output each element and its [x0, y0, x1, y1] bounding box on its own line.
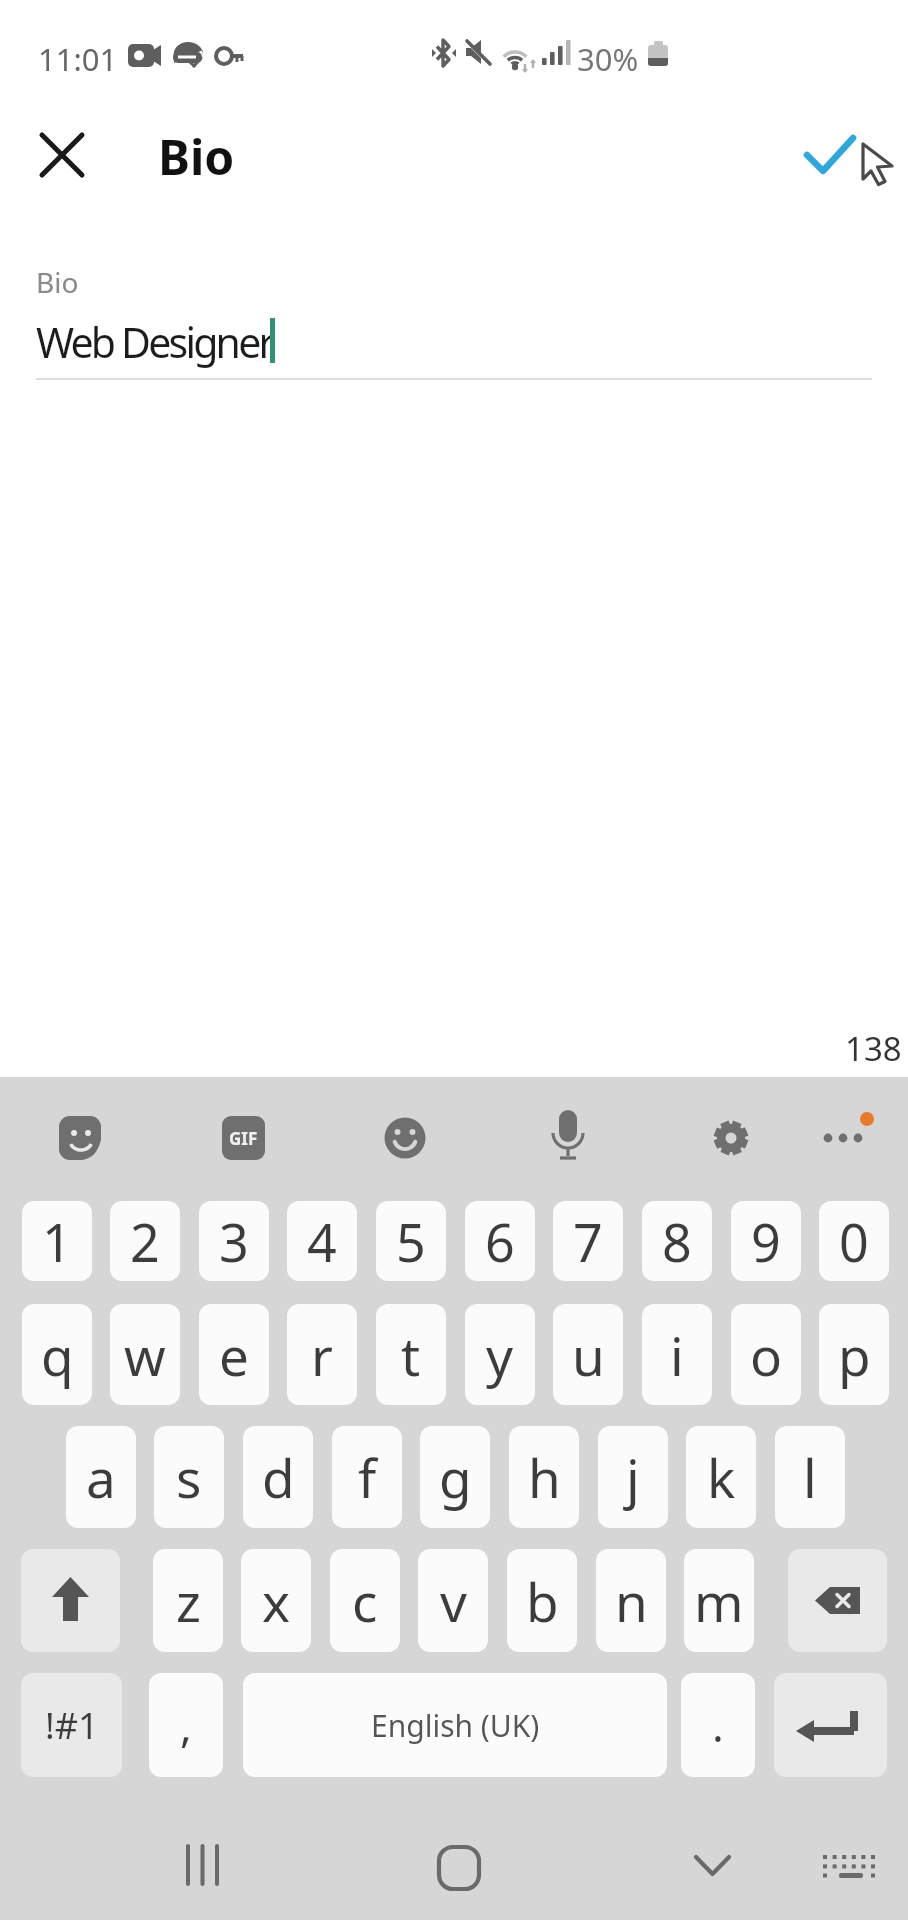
button[interactable]: v	[418, 1549, 488, 1652]
button[interactable]: r	[287, 1304, 357, 1405]
button[interactable]: 7	[553, 1201, 623, 1281]
button[interactable]: g	[420, 1426, 490, 1528]
button[interactable]	[21, 1549, 120, 1652]
button[interactable]: 3	[199, 1201, 269, 1281]
staticText: p	[838, 1319, 871, 1391]
staticText: 7	[573, 1206, 603, 1277]
staticText: 3	[219, 1206, 249, 1277]
staticText: Bio	[158, 124, 235, 189]
button[interactable]: x	[241, 1549, 311, 1652]
staticText: r	[311, 1319, 333, 1391]
staticText: x	[262, 1565, 291, 1637]
button[interactable]: 0	[819, 1201, 889, 1281]
button[interactable]: GIF	[215, 1110, 271, 1166]
staticText: a	[86, 1441, 116, 1513]
staticText: !#1	[45, 1701, 99, 1750]
button[interactable]: .	[681, 1673, 755, 1777]
staticText: o	[750, 1319, 783, 1391]
button[interactable]	[788, 1549, 887, 1652]
staticText: 8	[662, 1206, 692, 1277]
button[interactable]: o	[731, 1304, 801, 1405]
button[interactable]: 1	[22, 1201, 92, 1281]
staticText: 138	[845, 1026, 902, 1071]
staticText: English (UK)	[371, 1705, 540, 1746]
staticText: k	[707, 1441, 736, 1513]
button[interactable]	[31, 124, 93, 186]
staticText: 6	[485, 1206, 515, 1277]
staticText: .	[712, 1695, 724, 1755]
button[interactable]: w	[110, 1304, 180, 1405]
staticText: u	[572, 1319, 605, 1391]
button[interactable]: ,	[149, 1673, 223, 1777]
staticText: 5	[396, 1206, 426, 1277]
button[interactable]: u	[553, 1304, 623, 1405]
staticText: Bio	[36, 263, 79, 301]
staticText: w	[124, 1319, 166, 1391]
staticText: ,	[180, 1695, 192, 1755]
button[interactable]: b	[507, 1549, 577, 1652]
button[interactable]: j	[598, 1426, 668, 1528]
button[interactable]	[795, 125, 865, 187]
button[interactable]: f	[332, 1426, 402, 1528]
staticText: 2	[130, 1206, 160, 1277]
button[interactable]: m	[684, 1549, 754, 1652]
staticText: 11:01	[38, 38, 118, 80]
button[interactable]: t	[376, 1304, 446, 1405]
staticText: 9	[751, 1206, 781, 1277]
button[interactable]: c	[330, 1549, 400, 1652]
staticText: j	[626, 1441, 640, 1513]
button[interactable]	[430, 1840, 486, 1894]
staticText: Web Designer	[36, 314, 273, 370]
staticText: 30%	[577, 38, 639, 80]
button[interactable]	[377, 1110, 433, 1166]
button[interactable]	[703, 1110, 759, 1166]
button[interactable]: English (UK)	[243, 1673, 667, 1777]
button[interactable]	[52, 1110, 108, 1166]
staticText: 4	[307, 1206, 337, 1277]
staticText: t	[401, 1319, 421, 1391]
staticText: m	[694, 1565, 744, 1637]
button[interactable]: 9	[731, 1201, 801, 1281]
staticText: d	[262, 1441, 295, 1513]
button[interactable]: p	[819, 1304, 889, 1405]
staticText: f	[358, 1441, 377, 1513]
staticText: v	[440, 1565, 467, 1637]
button[interactable]: n	[596, 1549, 666, 1652]
staticText: s	[176, 1441, 202, 1513]
button[interactable]: 4	[287, 1201, 357, 1281]
button[interactable]	[540, 1106, 596, 1166]
staticText: 1	[42, 1206, 72, 1277]
button[interactable]	[774, 1673, 887, 1777]
button[interactable]: e	[199, 1304, 269, 1405]
button[interactable]: 2	[110, 1201, 180, 1281]
staticText: h	[528, 1441, 561, 1513]
button[interactable]: d	[243, 1426, 313, 1528]
staticText: i	[670, 1319, 684, 1391]
button[interactable]: s	[154, 1426, 224, 1528]
button[interactable]: !#1	[21, 1673, 122, 1777]
button[interactable]: q	[22, 1304, 92, 1405]
staticText: z	[176, 1565, 201, 1637]
button[interactable]: 8	[642, 1201, 712, 1281]
button[interactable]	[36, 258, 872, 378]
button[interactable]: k	[686, 1426, 756, 1528]
staticText: b	[526, 1565, 559, 1637]
button[interactable]	[812, 1106, 882, 1166]
button[interactable]: 5	[376, 1201, 446, 1281]
button[interactable]: h	[509, 1426, 579, 1528]
staticText: g	[439, 1441, 472, 1513]
button[interactable]: y	[465, 1304, 535, 1405]
staticText: e	[219, 1319, 249, 1391]
button[interactable]	[818, 1846, 880, 1886]
button[interactable]	[178, 1838, 228, 1890]
button[interactable]: l	[775, 1426, 845, 1528]
button[interactable]: z	[153, 1549, 223, 1652]
staticText: 0	[839, 1206, 869, 1277]
staticText: GIF	[229, 1127, 258, 1150]
staticText: l	[803, 1441, 817, 1513]
button[interactable]	[687, 1840, 737, 1892]
button[interactable]: 6	[465, 1201, 535, 1281]
staticText: n	[615, 1565, 648, 1637]
button[interactable]: a	[66, 1426, 136, 1528]
button[interactable]: i	[642, 1304, 712, 1405]
